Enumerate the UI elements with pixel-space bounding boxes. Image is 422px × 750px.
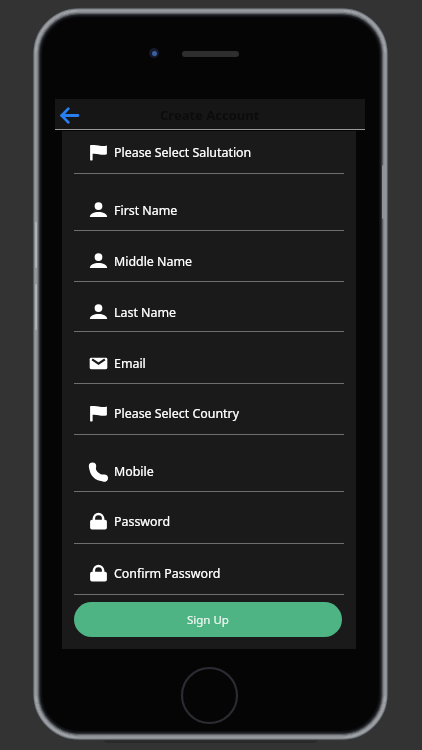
staticText: Email: [114, 355, 146, 372]
button[interactable]: Middle Name: [74, 245, 344, 277]
staticText: Middle Name: [114, 253, 193, 270]
staticText: Confirm Password: [114, 565, 221, 582]
staticText: Please Select Country: [114, 405, 239, 422]
button[interactable]: Back: [55, 101, 83, 129]
staticText: Password: [114, 513, 171, 530]
button[interactable]: Last Name: [74, 296, 344, 328]
staticText: Sign Up: [187, 612, 229, 628]
staticText: First Name: [114, 202, 178, 219]
button[interactable]: Please Select Salutation: [74, 136, 344, 168]
button[interactable]: Please Select Country: [74, 397, 344, 429]
button[interactable]: Email: [74, 347, 344, 379]
staticText: Mobile: [114, 463, 154, 480]
button[interactable]: Confirm Password: [74, 557, 344, 589]
button[interactable]: Password: [74, 505, 344, 537]
button[interactable]: Sign Up: [74, 602, 342, 637]
button[interactable]: Mobile: [74, 455, 344, 487]
staticText: Create Account: [160, 106, 260, 124]
staticText: Last Name: [114, 304, 177, 321]
button[interactable]: First Name: [74, 194, 344, 226]
staticText: Please Select Salutation: [114, 144, 252, 161]
